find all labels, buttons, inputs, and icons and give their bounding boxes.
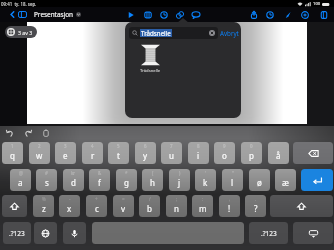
staticText: ? <box>254 203 258 214</box>
button[interactable]: Format <box>282 7 294 22</box>
button[interactable]: 1 <box>2 142 23 164</box>
button[interactable]: 8 <box>188 142 209 164</box>
button[interactable]: Avbryt <box>220 29 239 37</box>
button[interactable]: 3 av 3 <box>5 26 37 38</box>
button[interactable]: # <box>36 169 57 191</box>
button[interactable]: Animate <box>174 7 186 22</box>
button[interactable]: Insert <box>299 7 311 22</box>
button[interactable]: . <box>245 195 266 217</box>
button[interactable]: Next keyboard <box>34 222 57 244</box>
button[interactable]: 4 <box>82 142 103 164</box>
button[interactable]: Transitions <box>158 7 170 22</box>
button[interactable]: : <box>192 195 213 217</box>
button[interactable]: ( <box>142 169 163 191</box>
button[interactable]: Layout <box>142 7 154 22</box>
button[interactable]: æ <box>275 169 296 191</box>
button[interactable]: ø <box>249 169 270 191</box>
button[interactable]: % <box>33 195 54 217</box>
staticText: h <box>150 177 155 188</box>
button[interactable]: & <box>89 169 110 191</box>
button[interactable]: @ <box>10 169 31 191</box>
button[interactable]: .?123 <box>249 222 288 244</box>
button[interactable]: Backspace <box>293 142 333 164</box>
staticText: å <box>276 150 281 161</box>
button[interactable]: ; <box>166 195 187 217</box>
staticText: u <box>169 150 174 161</box>
staticText: & <box>98 170 102 176</box>
staticText: , <box>229 196 231 202</box>
staticText: 0 <box>250 143 253 149</box>
staticText: l <box>231 177 234 188</box>
button[interactable]: - <box>59 195 80 217</box>
button[interactable]: * <box>116 169 137 191</box>
button[interactable]: Play <box>125 7 137 22</box>
staticText: g <box>124 177 129 188</box>
button[interactable]: Back <box>6 7 18 22</box>
staticText: i <box>197 150 200 161</box>
button[interactable]: .?123 <box>3 222 31 244</box>
button[interactable]: Hide keyboard <box>293 222 333 244</box>
button[interactable]: Clear text <box>209 30 215 36</box>
staticText: 3 <box>64 143 67 149</box>
button[interactable]: Dictation <box>63 222 86 244</box>
button[interactable]: Shift <box>2 195 27 217</box>
staticText: 8 <box>197 143 200 149</box>
button[interactable]: Shift <box>270 195 333 217</box>
staticText: k <box>203 177 208 188</box>
button[interactable]: Share <box>248 7 260 22</box>
button[interactable]: ' <box>195 169 216 191</box>
button[interactable]: / <box>139 195 160 217</box>
staticText: Avbryt <box>220 29 239 37</box>
button[interactable]: , <box>219 195 240 217</box>
button[interactable]: å <box>268 142 289 164</box>
button[interactable]: ) <box>169 169 190 191</box>
staticText: y <box>143 150 148 161</box>
staticText: Trådsnelle <box>140 68 161 74</box>
button[interactable]: 9 <box>214 142 235 164</box>
staticText: ) <box>179 170 181 176</box>
staticText: f <box>98 177 101 188</box>
staticText: s <box>45 177 49 188</box>
staticText: 3 av 3 <box>18 29 33 36</box>
button[interactable]: Paste <box>39 126 53 140</box>
button[interactable]: 6 <box>135 142 156 164</box>
button[interactable]: 7 <box>161 142 182 164</box>
staticText: 1 <box>11 143 14 149</box>
staticText: b <box>147 203 152 214</box>
button[interactable]: " <box>222 169 243 191</box>
staticText: + <box>95 196 98 202</box>
button[interactable]: + <box>86 195 107 217</box>
staticText: ; <box>176 196 178 202</box>
button[interactable]: Sidebar <box>16 7 29 22</box>
staticText: .?123 <box>9 229 25 238</box>
staticText: Presentasjon <box>34 10 74 19</box>
staticText: a <box>18 177 23 188</box>
staticText: t <box>117 150 120 161</box>
staticText: . <box>255 196 257 202</box>
staticText: " <box>232 170 234 176</box>
staticText: ( <box>152 170 154 176</box>
button[interactable]: 5 <box>108 142 129 164</box>
button[interactable]: kr <box>63 169 84 191</box>
button[interactable]: Trådsnelle <box>133 44 167 74</box>
button[interactable]: Redo <box>21 126 35 140</box>
staticText: # <box>45 170 48 176</box>
button[interactable]: Trådsnelle <box>129 27 218 39</box>
button[interactable]: Return <box>301 169 333 191</box>
button[interactable]: Comment <box>190 7 202 22</box>
button[interactable]: 3 <box>55 142 76 164</box>
staticText: j <box>178 177 181 188</box>
staticText: m <box>199 203 207 214</box>
staticText: kr <box>71 170 76 176</box>
button[interactable]: 2 <box>29 142 50 164</box>
button[interactable]: More <box>318 7 330 22</box>
staticText: w <box>36 150 43 161</box>
staticText: d <box>71 177 76 188</box>
staticText: / <box>149 196 151 202</box>
button[interactable]: Undo <box>3 126 17 140</box>
button[interactable]: Media <box>264 7 276 22</box>
button[interactable]: 0 <box>241 142 262 164</box>
button[interactable]: = <box>113 195 134 217</box>
button[interactable]: Presentasjon <box>34 7 81 22</box>
